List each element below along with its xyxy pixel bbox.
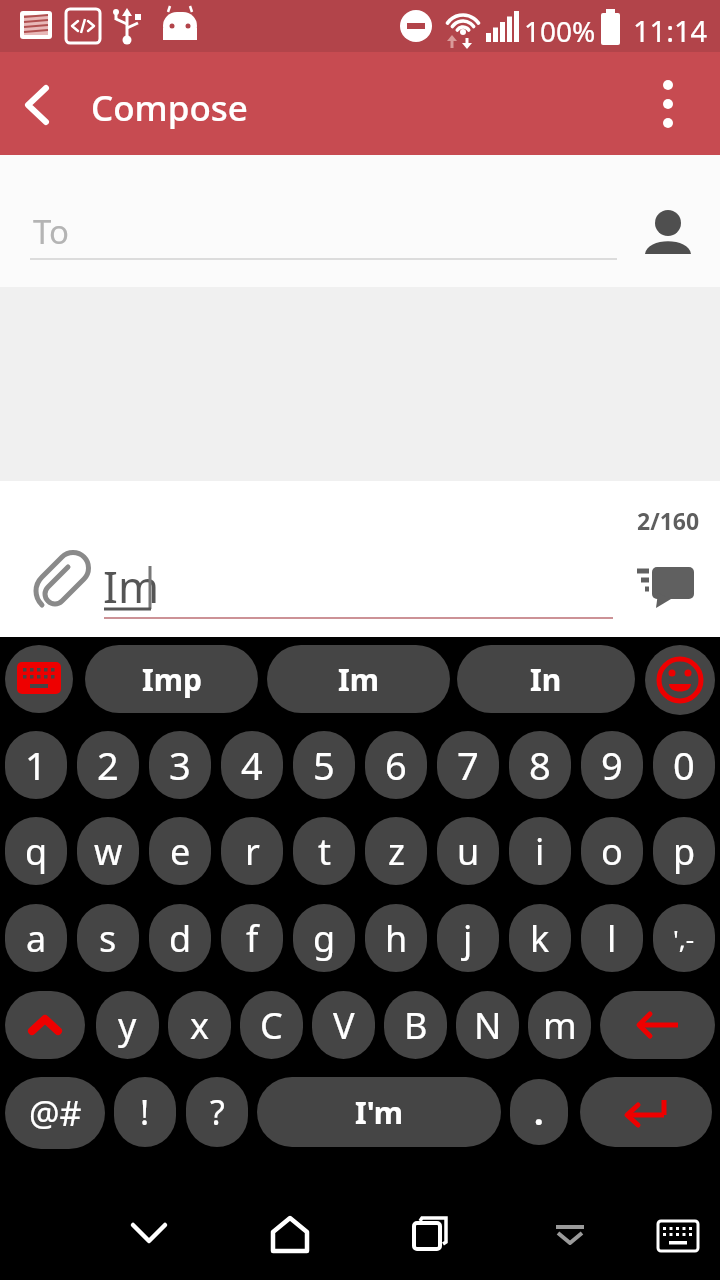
staticText: 3 [169,739,191,791]
button[interactable]: @# [5,1077,105,1149]
staticText: 100% [524,12,596,50]
button[interactable]: i [509,817,571,885]
button[interactable]: 2 [77,731,139,799]
button[interactable]: l [581,904,643,972]
button[interactable]: N [456,991,519,1059]
button[interactable]: 6 [365,731,427,799]
button[interactable]: . [510,1079,568,1145]
button[interactable]: e [149,817,211,885]
staticText: 9 [601,739,623,791]
button[interactable]: s [77,904,139,972]
button[interactable]: r [221,817,283,885]
staticText: N [474,1001,502,1050]
button[interactable] [119,1213,179,1257]
staticText: q [25,827,48,876]
button[interactable] [650,1213,706,1257]
staticText: t [318,827,331,876]
button[interactable]: 8 [509,731,571,799]
button[interactable]: u [437,817,499,885]
staticText: I'm [355,1092,403,1133]
button[interactable] [400,1213,460,1257]
staticText: r [245,827,260,876]
button[interactable]: 7 [437,731,499,799]
staticText: d [169,914,192,963]
button[interactable] [25,553,87,615]
button[interactable]: q [5,817,67,885]
button[interactable]: m [528,991,591,1059]
staticText: u [457,827,480,876]
staticText: Im [338,659,379,700]
staticText: 7 [457,739,479,791]
staticText: ? [210,1089,225,1135]
button[interactable] [540,1213,600,1257]
button[interactable] [628,559,700,613]
button[interactable]: a [5,904,67,972]
button[interactable]: 5 [293,731,355,799]
staticText: w [94,827,123,876]
staticText: m [543,1001,577,1050]
staticText: ',- [673,921,695,956]
button[interactable]: 1 [5,731,67,799]
staticText: i [535,827,545,876]
button[interactable] [5,645,73,713]
staticText: 2 [97,739,119,791]
button[interactable]: I'm [257,1077,501,1147]
staticText: f [246,914,259,963]
button[interactable]: f [221,904,283,972]
button[interactable]: ? [186,1077,248,1147]
staticText: e [170,827,191,876]
button[interactable]: 9 [581,731,643,799]
button[interactable]: w [77,817,139,885]
button[interactable]: 0 [653,731,715,799]
button[interactable]: j [437,904,499,972]
button[interactable]: t [293,817,355,885]
button[interactable]: p [653,817,715,885]
button[interactable]: ',- [653,904,715,972]
staticText: 8 [529,739,551,791]
staticText: In [530,659,562,700]
staticText: C [260,1001,283,1050]
button[interactable] [96,551,616,621]
button[interactable]: g [293,904,355,972]
staticText: 0 [673,739,695,791]
staticText: B [404,1001,428,1050]
button[interactable]: x [168,991,231,1059]
button[interactable]: V [312,991,375,1059]
staticText: l [607,914,617,963]
staticText: 5 [313,739,335,791]
button[interactable] [260,1213,320,1257]
button[interactable]: Imp [85,645,258,713]
button[interactable]: d [149,904,211,972]
button[interactable]: 3 [149,731,211,799]
staticText: g [313,914,336,963]
button[interactable]: C [240,991,303,1059]
button[interactable]: In [457,645,635,713]
button[interactable]: h [365,904,427,972]
staticText: a [26,914,47,963]
staticText: z [388,827,405,876]
staticText: ! [140,1089,150,1135]
staticText: 11:14 [633,11,708,50]
button[interactable]: Im [267,645,450,713]
staticText: o [601,827,623,876]
button[interactable]: ! [114,1077,176,1147]
staticText: To [33,209,70,254]
button[interactable] [580,1077,712,1147]
staticText: Imp [142,659,202,700]
staticText: Compose [91,84,248,132]
button[interactable]: o [581,817,643,885]
button[interactable] [640,77,696,133]
button[interactable]: y [96,991,159,1059]
button[interactable] [645,645,715,715]
button[interactable]: z [365,817,427,885]
button[interactable]: To [0,155,720,287]
button[interactable] [600,991,715,1059]
staticText: s [99,914,117,963]
button[interactable]: k [509,904,571,972]
button[interactable]: 4 [221,731,283,799]
button[interactable]: B [384,991,447,1059]
button[interactable] [5,991,85,1059]
staticText: k [530,914,550,963]
staticText: V [333,1001,355,1050]
button[interactable] [18,86,62,124]
